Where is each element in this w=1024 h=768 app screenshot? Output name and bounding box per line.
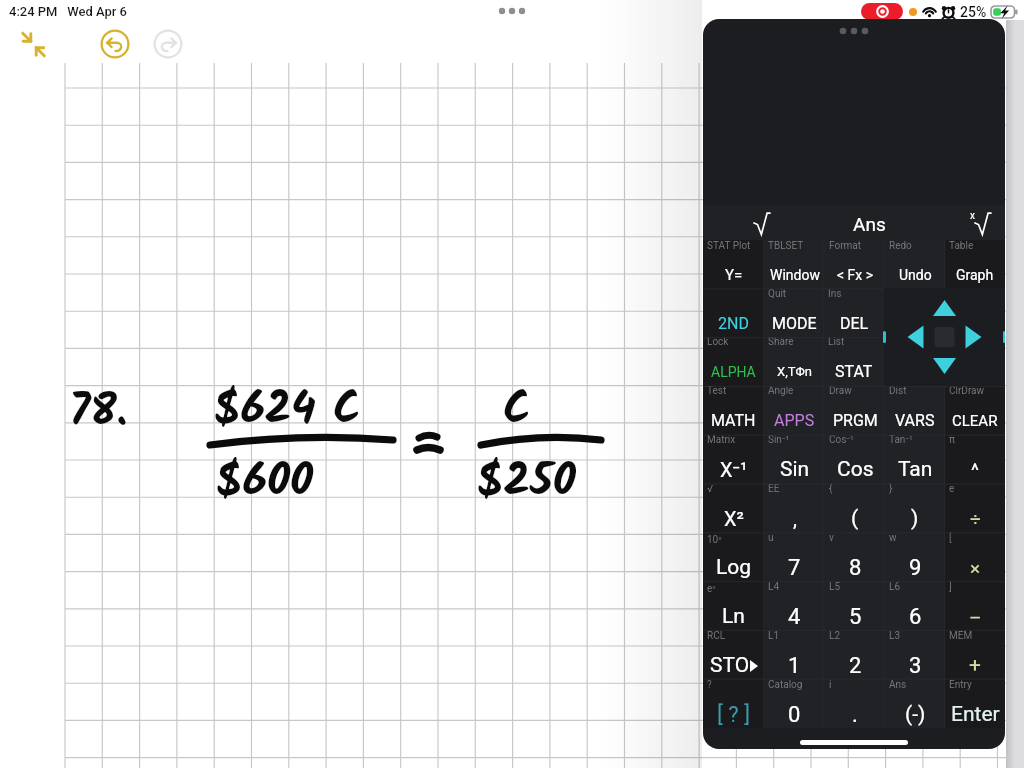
- button[interactable]: List: [824, 336, 884, 385]
- button[interactable]: Sin⁻¹: [764, 434, 825, 483]
- button[interactable]: L3: [885, 630, 945, 679]
- button[interactable]: w: [885, 532, 945, 581]
- button[interactable]: Move left: [884, 318, 928, 356]
- button[interactable]: Redo: [885, 240, 945, 288]
- staticText: PRGM: [833, 411, 878, 430]
- button[interactable]: L4: [764, 581, 825, 630]
- button[interactable]: L2: [825, 630, 885, 679]
- staticText: 0: [788, 702, 801, 728]
- button[interactable]: Move down: [923, 348, 967, 386]
- button[interactable]: Move up: [923, 288, 967, 326]
- button[interactable]: {: [825, 483, 885, 532]
- button[interactable]: Ans: [847, 205, 891, 240]
- button[interactable]: v: [825, 532, 885, 581]
- button[interactable]: 2ND: [703, 288, 764, 336]
- button[interactable]: Table: [945, 240, 1005, 288]
- button[interactable]: MEM: [945, 630, 1005, 679]
- button[interactable]: Quit: [764, 288, 824, 336]
- staticText: L5: [829, 581, 841, 593]
- staticText: Ln: [722, 604, 745, 629]
- button[interactable]: u: [764, 532, 825, 581]
- staticText: CLEAR: [952, 412, 998, 430]
- staticText: EE: [768, 483, 780, 495]
- button[interactable]: ?: [703, 679, 764, 728]
- staticText: e: [949, 483, 955, 495]
- button[interactable]: Test: [703, 385, 764, 434]
- staticText: L3: [889, 630, 901, 642]
- staticText: X⁻¹: [720, 458, 748, 481]
- button[interactable]: Nth root: [970, 210, 991, 236]
- staticText: Dist: [889, 385, 907, 397]
- staticText: Sin: [780, 457, 810, 482]
- staticText: L4: [768, 581, 780, 593]
- staticText: List: [828, 336, 845, 348]
- staticText: [: [949, 532, 952, 544]
- button[interactable]: }: [885, 483, 945, 532]
- button[interactable]: Square root: [749, 210, 775, 236]
- button[interactable]: L5: [825, 581, 885, 630]
- staticText: C: [503, 375, 531, 447]
- button[interactable]: Ins: [824, 288, 884, 336]
- staticText: Cos⁻¹: [829, 434, 854, 446]
- button[interactable]: EE: [764, 483, 825, 532]
- button[interactable]: Tan⁻¹: [885, 434, 945, 483]
- staticText: (-): [905, 702, 926, 727]
- button[interactable]: e: [945, 483, 1005, 532]
- staticText: TBLSET: [768, 240, 804, 252]
- staticText: 5: [849, 604, 862, 630]
- staticText: 10ˣ: [707, 532, 722, 546]
- button[interactable]: π: [945, 434, 1005, 483]
- button[interactable]: RCL: [703, 630, 764, 679]
- button[interactable]: Draw: [825, 385, 885, 434]
- staticText: π: [949, 434, 955, 446]
- button[interactable]: eˣ: [703, 581, 764, 630]
- staticText: Draw: [829, 385, 852, 397]
- button[interactable]: Dist: [885, 385, 945, 434]
- button[interactable]: Recording: [861, 3, 903, 20]
- staticText: .: [852, 702, 858, 728]
- staticText: 4: [788, 604, 801, 630]
- staticText: VARS: [895, 411, 935, 430]
- button[interactable]: Collapse: [16, 27, 50, 61]
- button[interactable]: Cos⁻¹: [825, 434, 885, 483]
- button[interactable]: i: [825, 679, 885, 728]
- button[interactable]: L6: [885, 581, 945, 630]
- button[interactable]: Redo: [151, 27, 184, 60]
- staticText: 78.: [69, 377, 128, 449]
- staticText: Enter: [951, 702, 1000, 727]
- button[interactable]: Matrix: [703, 434, 764, 483]
- staticText: Log: [716, 555, 752, 580]
- staticText: ?: [707, 679, 712, 691]
- button[interactable]: [: [945, 532, 1005, 581]
- button[interactable]: Move right: [961, 318, 1005, 356]
- staticText: Angle: [768, 385, 794, 397]
- staticText: Entry: [949, 679, 972, 691]
- button[interactable]: Angle: [764, 385, 825, 434]
- button[interactable]: TBLSET: [764, 240, 825, 288]
- button[interactable]: Lock: [703, 336, 764, 385]
- button[interactable]: 10ˣ: [703, 532, 764, 581]
- button[interactable]: ]: [945, 581, 1005, 630]
- button[interactable]: Share: [764, 336, 824, 385]
- staticText: 1: [788, 653, 801, 679]
- button[interactable]: Format: [825, 240, 885, 288]
- staticText: L2: [829, 630, 841, 642]
- staticText: STAT: [835, 362, 873, 381]
- button[interactable]: √: [703, 483, 764, 532]
- staticText: v: [829, 532, 834, 544]
- button[interactable]: ClrDraw: [945, 385, 1005, 434]
- staticText: [ ? ]: [717, 702, 750, 728]
- staticText: MATH: [711, 411, 756, 430]
- button[interactable]: L1: [764, 630, 825, 679]
- button[interactable]: Ans: [885, 679, 945, 728]
- button[interactable]: Undo: [98, 27, 131, 60]
- staticText: L6: [889, 581, 901, 593]
- staticText: Table: [949, 240, 974, 252]
- button[interactable]: Entry: [945, 679, 1005, 728]
- staticText: x: [970, 210, 975, 222]
- staticText: 2: [849, 653, 862, 679]
- staticText: Sin⁻¹: [768, 434, 790, 446]
- button[interactable]: Catalog: [764, 679, 825, 728]
- staticText: +: [969, 653, 981, 678]
- button[interactable]: STAT Plot: [703, 240, 764, 288]
